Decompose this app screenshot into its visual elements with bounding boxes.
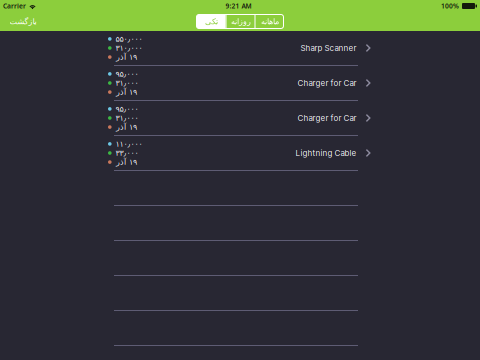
staticText: ۳۱٫۰۰۰	[116, 78, 139, 88]
staticText: Lightning Cable	[296, 148, 357, 158]
button[interactable]: ۵۵۰٫۰۰۰	[96, 31, 384, 66]
staticText: ۳۳٫۰۰۰	[116, 148, 139, 158]
button[interactable]: ماهانه	[255, 14, 283, 28]
button[interactable]: ۱۱۰٫۰۰۰	[96, 136, 384, 171]
staticText: ۳۱۰٫۰۰۰	[116, 43, 143, 53]
button[interactable]: ۹۵٫۰۰۰	[96, 101, 384, 136]
staticText: بازگشت	[9, 17, 36, 26]
staticText: ۱۹ آذر	[116, 52, 137, 62]
staticText: ۱۱۰٫۰۰۰	[116, 139, 143, 148]
staticText: ۹۵٫۰۰۰	[116, 104, 139, 113]
staticText: ۳۱٫۰۰۰	[116, 113, 139, 123]
button[interactable]: تکی	[196, 14, 225, 28]
staticText: Carrier	[3, 2, 26, 10]
button[interactable]: روزانه	[226, 14, 254, 28]
staticText: ۱۹ آذر	[116, 122, 137, 132]
button[interactable]: ۹۵٫۰۰۰	[96, 66, 384, 101]
staticText: ماهانه	[260, 17, 278, 26]
staticText: 9:21 AM	[225, 2, 251, 10]
button[interactable]: بازگشت	[5, 14, 40, 29]
staticText: 100%	[441, 2, 459, 10]
staticText: ۱۹ آذر	[116, 157, 137, 167]
staticText: ۹۵٫۰۰۰	[116, 69, 139, 78]
staticText: Charger for Car	[298, 78, 357, 88]
staticText: روزانه	[230, 17, 250, 26]
staticText: ۵۵۰٫۰۰۰	[116, 34, 143, 43]
staticText: Charger for Car	[298, 113, 357, 123]
staticText: تکی	[204, 17, 217, 26]
staticText: ۱۹ آذر	[116, 87, 137, 97]
staticText: Sharp Scanner	[301, 43, 357, 53]
